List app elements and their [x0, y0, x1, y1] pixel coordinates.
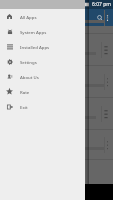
other: More options [104, 110, 108, 119]
button[interactable]: More options [0, 98, 113, 130]
other: More options [107, 14, 108, 23]
button[interactable]: More options [0, 130, 113, 160]
button[interactable]: About Us [0, 69, 85, 84]
button[interactable]: Settings [0, 54, 85, 69]
other: More options [106, 14, 109, 22]
button[interactable]: Rate [0, 84, 85, 99]
staticText: Exit [20, 104, 28, 110]
staticText: Rate [20, 89, 30, 95]
button[interactable]: Exit [0, 99, 85, 114]
other: More options [107, 141, 108, 150]
other: Search [97, 15, 103, 21]
other: Open navigation drawer [4, 14, 11, 21]
staticText: All Apps [20, 14, 37, 20]
staticText: Settings [20, 59, 37, 65]
button[interactable]: System Apps [0, 24, 85, 39]
staticText: 6:07 pm [92, 1, 111, 8]
button[interactable]: More options [0, 66, 113, 98]
staticText: About Us [20, 74, 39, 80]
button[interactable]: More options [0, 34, 113, 66]
staticText: All Apps [15, 14, 39, 22]
staticText: Installed Apps [20, 44, 50, 50]
button[interactable]: All Apps [0, 9, 85, 24]
button[interactable]: More options [0, 2, 113, 34]
other: More options [107, 78, 108, 87]
other: More options [104, 46, 108, 55]
staticText: System Apps [20, 29, 47, 35]
button[interactable]: Installed Apps [0, 39, 85, 54]
